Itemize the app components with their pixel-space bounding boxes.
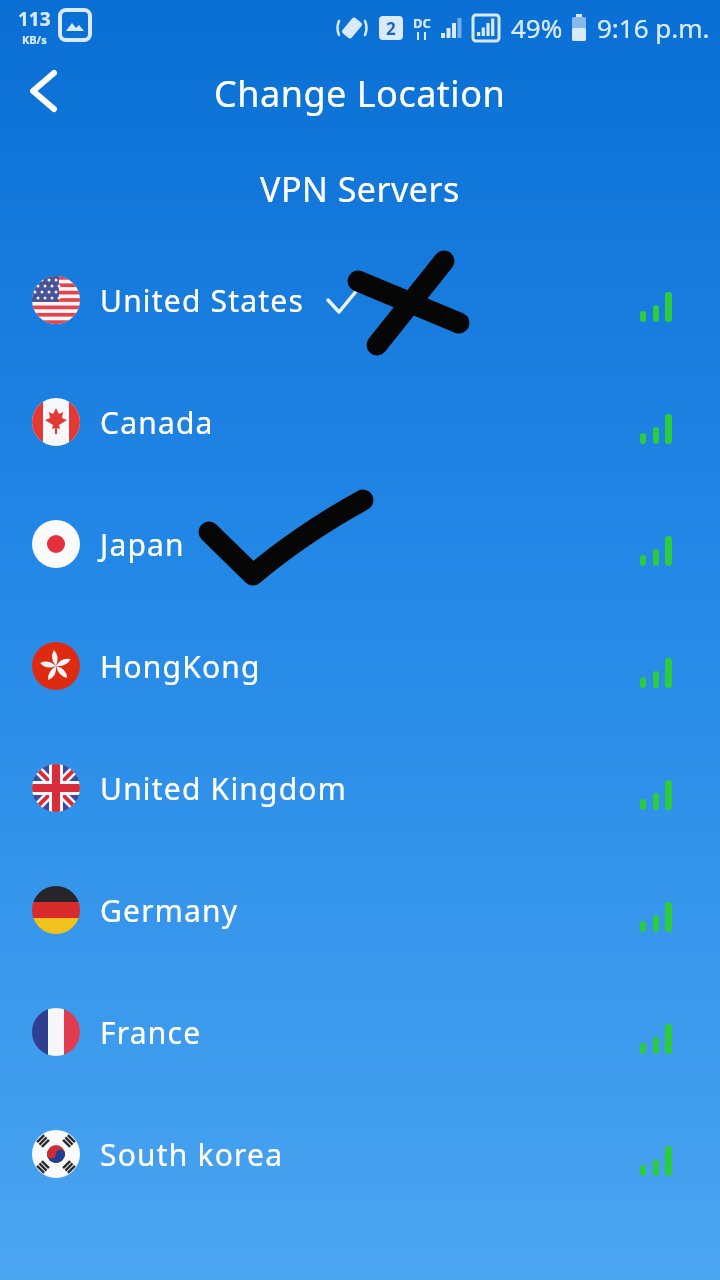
button[interactable]: South korea	[32, 1126, 688, 1182]
staticText: KB/s	[22, 32, 47, 47]
button[interactable]: Germany	[32, 882, 688, 938]
staticText: DC	[413, 14, 431, 32]
staticText: Japan	[100, 524, 185, 565]
button[interactable]	[20, 66, 68, 114]
button[interactable]: HongKong	[32, 638, 688, 694]
staticText: Canada	[100, 402, 214, 443]
staticText: United Kingdom	[100, 768, 347, 809]
staticText: 2	[386, 17, 396, 40]
staticText: HongKong	[100, 646, 261, 687]
staticText: 113	[18, 6, 51, 32]
staticText: 49%	[511, 10, 563, 45]
staticText: South korea	[100, 1134, 284, 1175]
staticText: Germany	[100, 890, 239, 931]
staticText: United States	[100, 280, 305, 321]
staticText: 9:16 p.m.	[597, 10, 710, 45]
button[interactable]: Canada	[32, 394, 688, 450]
staticText: Change Location	[214, 69, 506, 118]
button[interactable]: France	[32, 1004, 688, 1060]
button[interactable]: United Kingdom	[32, 760, 688, 816]
staticText: France	[100, 1012, 202, 1053]
button[interactable]: United States	[32, 272, 688, 328]
staticText: VPN Servers	[260, 166, 460, 212]
button[interactable]: Japan	[32, 516, 688, 572]
